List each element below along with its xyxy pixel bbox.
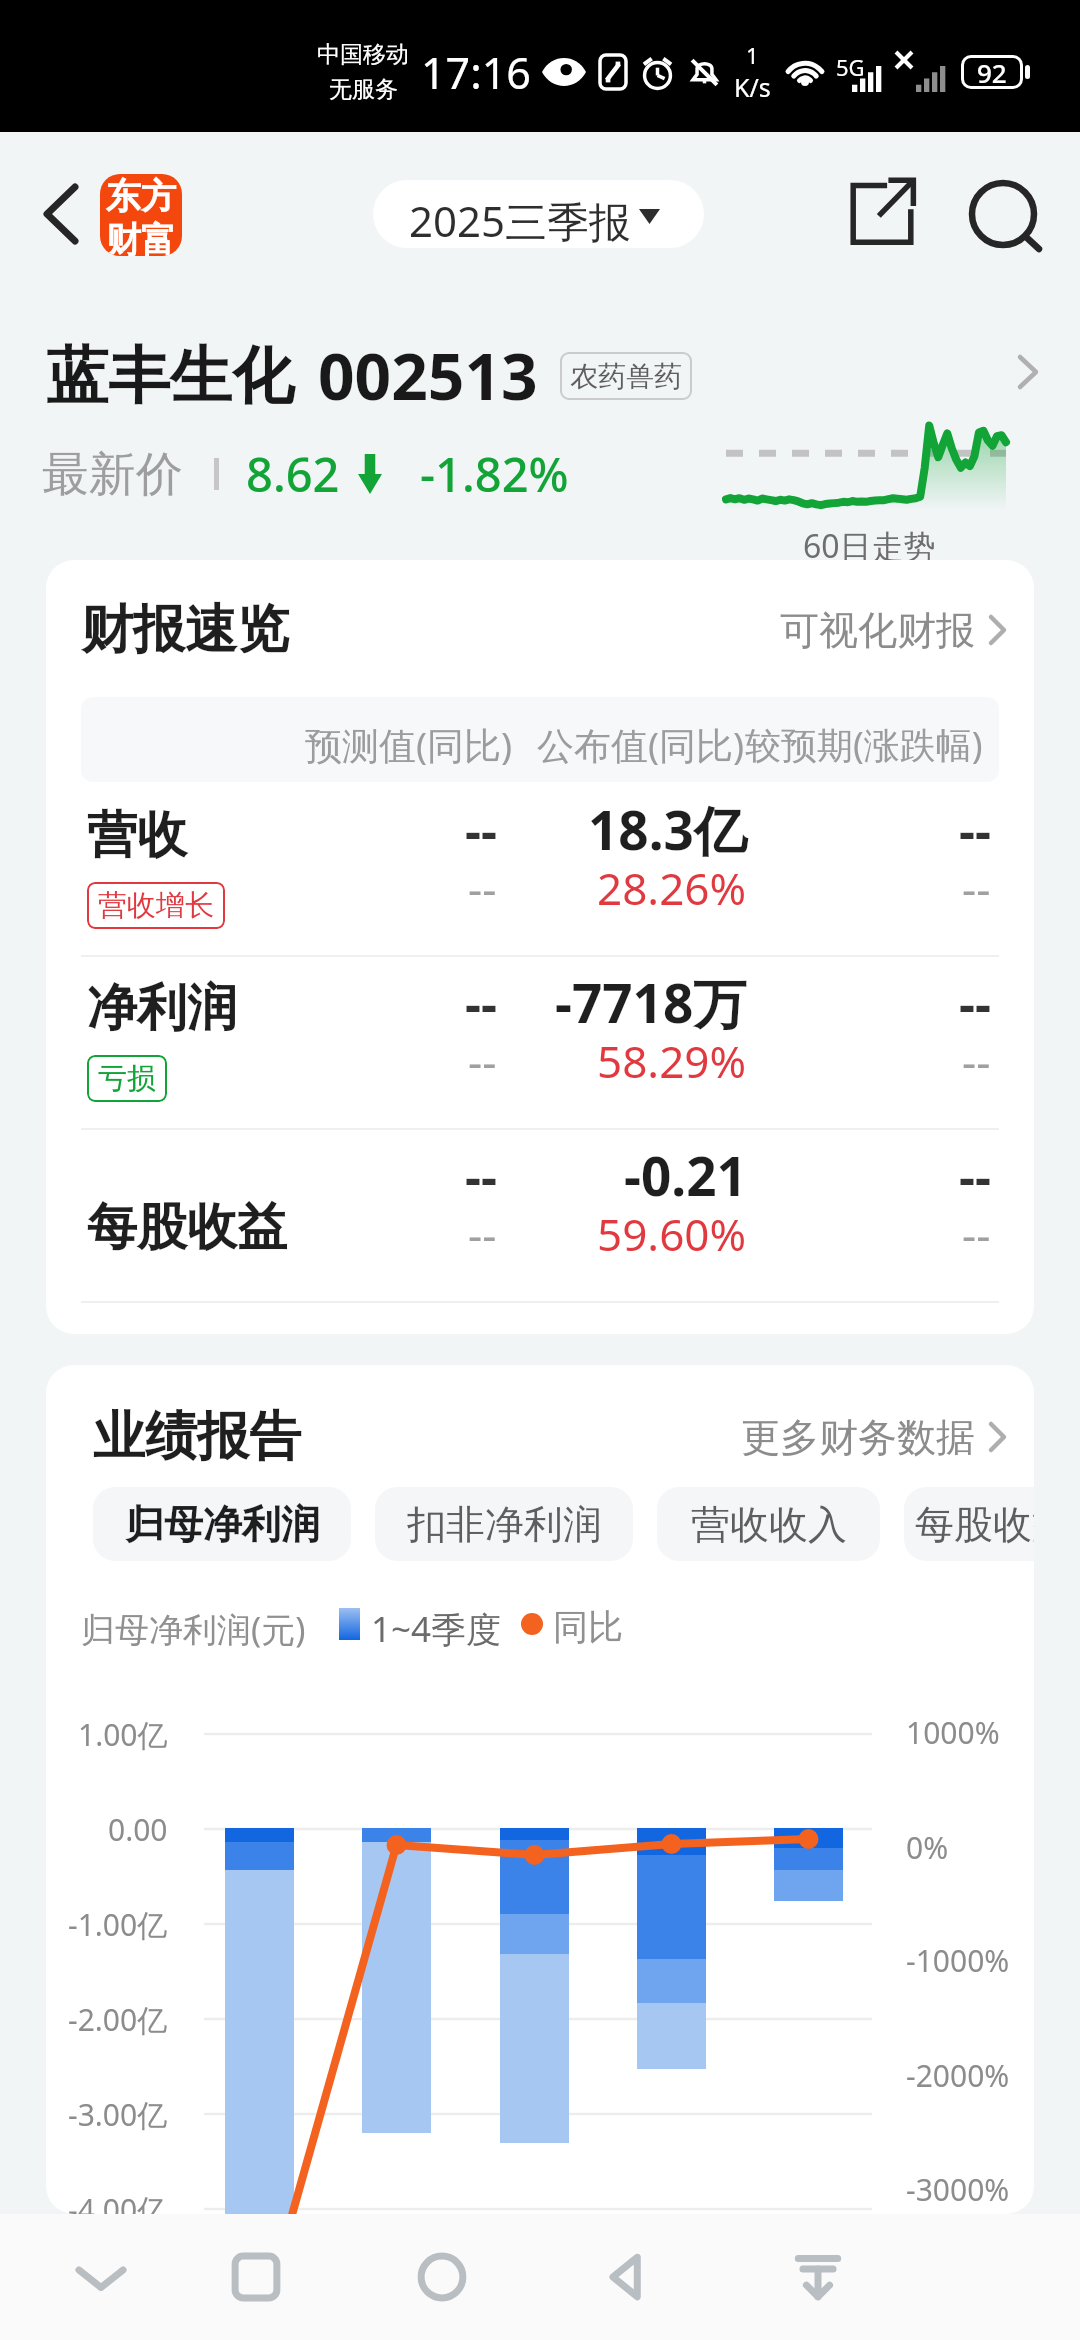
button[interactable]: 净利润: [81, 955, 999, 1128]
staticText: -0.21: [624, 1139, 747, 1211]
button[interactable]: 主页: [387, 2222, 497, 2332]
staticText: 8.62: [246, 442, 340, 506]
staticText: 0.00: [108, 1809, 168, 1850]
staticText: 净利润: [87, 977, 237, 1040]
staticText: 60日走势: [803, 524, 936, 568]
staticText: -1000%: [906, 1940, 1010, 1981]
staticText: 财报速览: [81, 597, 289, 663]
button[interactable]: 搜索: [953, 162, 1057, 266]
staticText: 无服务: [329, 75, 398, 104]
staticText: --: [962, 858, 991, 918]
staticText: --: [959, 969, 991, 1037]
staticText: 每股收益: [87, 1196, 287, 1259]
button[interactable]: 2025三季报: [373, 180, 704, 248]
staticText: 归母净利润(元): [81, 1606, 306, 1652]
staticText: 中国移动: [317, 40, 409, 69]
button[interactable]: 收起: [46, 2222, 156, 2332]
staticText: 较预期(涨跌幅): [745, 720, 983, 769]
staticText: 58.29%: [597, 1031, 747, 1091]
staticText: 营收: [87, 804, 187, 867]
staticText: 1.00亿: [78, 1714, 168, 1755]
staticText: 59.60%: [597, 1204, 747, 1264]
staticText: 公布值(同比): [537, 719, 745, 770]
staticText: -2.00亿: [68, 1999, 168, 2040]
button[interactable]: 东方财富: [100, 174, 182, 256]
staticText: --: [468, 1204, 497, 1264]
staticText: 5G: [836, 52, 865, 82]
staticText: 2025三季报: [409, 192, 632, 248]
staticText: K/s: [734, 70, 771, 104]
staticText: --: [465, 969, 497, 1037]
staticText: 扣非净利润: [407, 1500, 602, 1549]
staticText: 92: [977, 55, 1007, 89]
staticText: 归母净利润: [125, 1500, 320, 1549]
staticText: 1: [746, 40, 759, 70]
staticText: 18.3亿: [588, 793, 747, 865]
button[interactable]: 扣非净利润: [375, 1487, 633, 1561]
staticText: 蓝丰生化: [46, 337, 294, 415]
staticText: 东方: [106, 174, 176, 218]
staticText: -4.00亿: [68, 2189, 168, 2214]
staticText: 同比: [553, 1605, 623, 1649]
button[interactable]: 多任务: [201, 2222, 311, 2332]
staticText: 002513: [318, 332, 538, 419]
button[interactable]: 分享: [834, 164, 930, 260]
staticText: --: [959, 1142, 991, 1210]
staticText: --: [959, 796, 991, 864]
button[interactable]: 业绩报告: [46, 1391, 1034, 1483]
button[interactable]: 每股收益: [904, 1487, 1034, 1561]
staticText: 营收增长: [98, 887, 214, 924]
button[interactable]: 个股详情: [1000, 344, 1056, 400]
staticText: --: [465, 1142, 497, 1210]
staticText: 亏损: [98, 1060, 156, 1097]
staticText: -1.00亿: [68, 1904, 168, 1945]
staticText: 28.26%: [597, 858, 747, 918]
staticText: 财富: [106, 218, 176, 256]
staticText: --: [962, 1204, 991, 1264]
staticText: 0%: [906, 1827, 949, 1868]
staticText: -7718万: [555, 966, 747, 1038]
staticText: -3000%: [906, 2169, 1010, 2210]
button[interactable]: 返回: [573, 2222, 683, 2332]
staticText: 预测值(同比): [305, 719, 513, 770]
button[interactable]: 下载: [763, 2222, 873, 2332]
staticText: 1~4季度: [371, 1605, 502, 1653]
staticText: -1.82%: [420, 442, 569, 506]
staticText: 营收收入: [691, 1500, 847, 1549]
button[interactable]: 归母净利润: [93, 1487, 351, 1561]
staticText: 每股收益: [915, 1500, 1034, 1549]
staticText: 业绩报告: [93, 1404, 301, 1470]
staticText: 1000%: [906, 1712, 1000, 1753]
staticText: --: [468, 1031, 497, 1091]
staticText: -3.00亿: [68, 2094, 168, 2135]
staticText: --: [465, 796, 497, 864]
button[interactable]: 每股收益: [81, 1128, 999, 1301]
button[interactable]: 营收收入: [657, 1487, 880, 1561]
staticText: --: [468, 858, 497, 918]
button[interactable]: 营收: [81, 782, 999, 955]
staticText: 农药兽药: [570, 359, 682, 394]
staticText: 可视化财报: [780, 606, 975, 655]
button[interactable]: 财报速览: [46, 584, 1034, 676]
button[interactable]: 返回: [22, 176, 98, 252]
staticText: 17:16: [421, 43, 531, 102]
staticText: 最新价: [42, 445, 183, 504]
staticText: 更多财务数据: [741, 1413, 975, 1462]
staticText: -2000%: [906, 2055, 1010, 2096]
staticText: --: [962, 1031, 991, 1091]
